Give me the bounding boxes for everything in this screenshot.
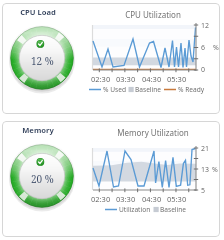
staticText: % [213,43,219,53]
staticText: 02:30 [91,194,111,204]
staticText: 12 % [31,54,54,68]
staticText: 12 [201,21,210,31]
staticText: 02:30 [91,74,111,84]
staticText: % Used [103,85,126,94]
staticText: 13 [201,165,210,175]
staticText: 04:30 [142,74,162,84]
button[interactable]: % Used [88,84,205,95]
button[interactable]: CPU Load [2,3,220,114]
staticText: 6 [201,43,206,53]
staticText: 05:30 [167,194,187,204]
staticText: Baseline [135,85,162,94]
staticText: Memory [22,125,54,135]
button[interactable]: Utilization [104,204,187,215]
staticText: Baseline [160,205,187,214]
staticText: CPU Utilization [125,9,181,20]
staticText: Utilization [119,205,151,214]
staticText: 04:30 [142,194,162,204]
staticText: 20 % [31,172,54,186]
staticText: % [212,165,218,175]
staticText: Memory Utilization [117,127,189,138]
staticText: 0 [201,65,206,75]
staticText: 03:30 [116,194,136,204]
staticText: % Ready [178,85,205,94]
staticText: 21 [201,144,210,154]
button[interactable]: Memory [2,121,220,237]
staticText: 5 [201,186,206,196]
staticText: 05:30 [167,74,187,84]
staticText: 03:30 [116,74,136,84]
staticText: CPU Load [20,7,56,17]
